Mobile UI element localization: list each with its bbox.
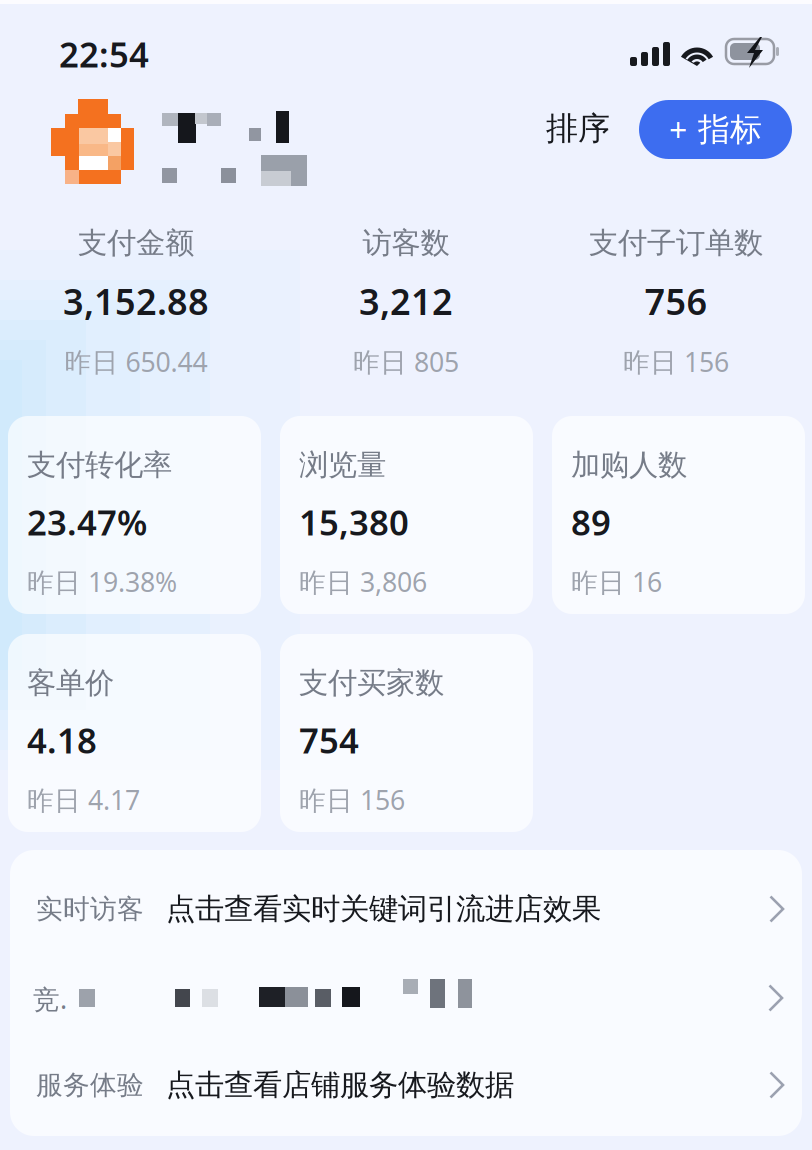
button[interactable]: 浏览量: [280, 416, 533, 614]
staticText: 支付金额: [78, 225, 194, 261]
staticText: 客单价: [27, 665, 114, 701]
button[interactable]: 服务体验: [10, 1041, 802, 1129]
staticText: 支付转化率: [27, 447, 172, 483]
staticText: 访客数: [362, 225, 449, 261]
button[interactable]: 实时访客: [10, 865, 802, 953]
staticText: 支付买家数: [299, 665, 444, 701]
button[interactable]: 支付买家数: [280, 634, 533, 832]
staticText: 22:54: [59, 31, 149, 77]
staticText: 浏览量: [299, 447, 386, 483]
staticText: 服务体验: [36, 1069, 144, 1101]
staticText: 15,380: [299, 499, 409, 545]
button[interactable]: 支付转化率: [8, 416, 261, 614]
staticText: 4.18: [27, 717, 97, 763]
staticText: 昨日 3,806: [299, 564, 427, 599]
staticText: 89: [571, 499, 611, 545]
button[interactable]: 加购人数: [552, 416, 805, 614]
staticText: 指标: [698, 110, 762, 149]
staticText: 实时访客: [36, 893, 144, 925]
staticText: 昨日 650.44: [64, 344, 207, 379]
staticText: 加购人数: [571, 447, 687, 483]
staticText: 3,152.88: [63, 277, 209, 325]
staticText: 竞.: [33, 981, 67, 1016]
staticText: +: [669, 108, 687, 151]
staticText: 昨日 156: [623, 344, 729, 379]
staticText: 支付子订单数: [589, 225, 763, 261]
staticText: 点击查看实时关键词引流进店效果: [166, 891, 601, 927]
button[interactable]: 排序: [538, 99, 618, 158]
button[interactable]: 客单价: [8, 634, 261, 832]
staticText: 昨日 4.17: [27, 782, 140, 817]
staticText: 3,212: [359, 277, 453, 325]
staticText: 23.47%: [27, 499, 147, 545]
staticText: 点击查看店铺服务体验数据: [166, 1067, 514, 1103]
staticText: 754: [299, 717, 359, 763]
staticText: 昨日 19.38%: [27, 564, 177, 599]
button[interactable]: 竞争情报: [10, 953, 802, 1041]
staticText: 昨日 805: [353, 344, 459, 379]
staticText: 昨日 156: [299, 782, 405, 817]
staticText: 昨日 16: [571, 564, 662, 599]
staticText: 排序: [546, 109, 610, 148]
button[interactable]: +: [639, 100, 792, 159]
staticText: 756: [644, 277, 707, 325]
